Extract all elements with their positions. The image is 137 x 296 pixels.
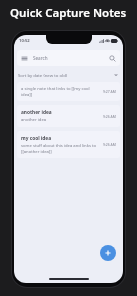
- staticText: Search: [33, 55, 48, 61]
- other: Menu: [21, 55, 28, 62]
- button[interactable]: New note: [100, 245, 116, 261]
- staticText: 9:26 AM: [103, 142, 116, 147]
- staticText: 9:26 AM: [103, 114, 116, 119]
- staticText: 9:27 AM: [103, 89, 116, 94]
- other: Search: [109, 55, 116, 62]
- button[interactable]: another idea: [17, 105, 120, 127]
- staticText: another idea: [21, 117, 47, 123]
- button[interactable]: a single note that links to [[my cool id…: [17, 82, 120, 101]
- staticText: my cool idea: [21, 135, 52, 142]
- staticText: a single note that links to [[my cool id…: [21, 86, 100, 97]
- staticText: 10:52: [19, 38, 30, 44]
- staticText: Sort by date (new to old): [18, 72, 68, 78]
- staticText: some stuff about this idea and links to …: [21, 143, 100, 154]
- staticText: Quick Capture Notes: [10, 5, 127, 21]
- staticText: another idea: [21, 109, 52, 116]
- button[interactable]: Menu: [17, 50, 120, 66]
- button[interactable]: Sort by date (new to old): [18, 72, 119, 78]
- button[interactable]: my cool idea: [17, 131, 120, 158]
- other: Change sort order: [113, 73, 119, 77]
